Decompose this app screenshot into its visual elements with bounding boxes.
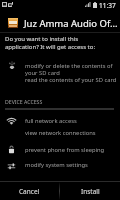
staticText: Do you want to install this application?… [5,35,96,51]
staticText: full network access [25,117,77,125]
staticText: read the contents of your SD card [25,76,117,84]
staticText: 11:37 [99,1,116,10]
staticText: Juz Amma Audio Of... [24,17,118,30]
staticText: Install [81,187,100,196]
staticText: DEVICE ACCESS [5,98,43,105]
staticText: prevent phone from sleeping [25,146,105,154]
staticText: view network connections [25,129,96,137]
staticText: modify system settings [25,161,88,169]
button[interactable]: Install [60,182,120,200]
button[interactable]: Cancel [0,182,59,200]
staticText: modify or delete the contents of your SD… [25,62,113,77]
staticText: Cancel [19,187,40,196]
